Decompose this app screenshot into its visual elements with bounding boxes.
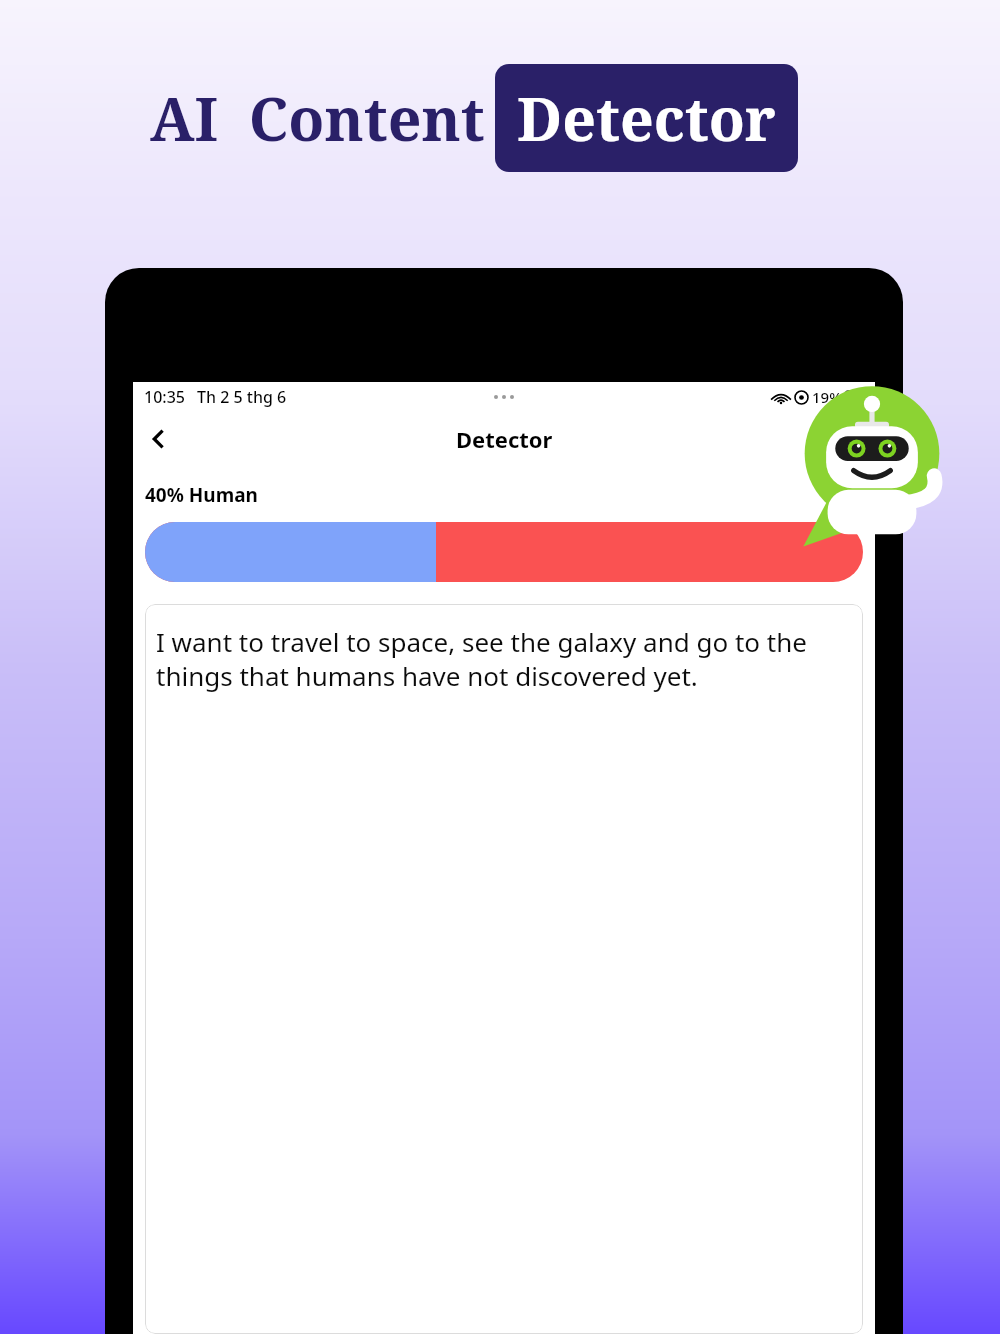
staticText: Th 2 5 thg 6 [197, 386, 287, 408]
staticText: 40% Human [145, 482, 258, 508]
staticText: 19% [812, 387, 842, 407]
button[interactable] [145, 522, 863, 582]
staticText: Detector [456, 424, 553, 454]
staticText: AI Content [150, 78, 485, 158]
button[interactable]: I want to travel to space, see the galax… [145, 604, 863, 1334]
staticText: I want to travel to space, see the galax… [156, 624, 851, 693]
staticText: Detector [517, 78, 776, 158]
other: AI assistant robot [798, 384, 946, 532]
button[interactable]: Back [137, 417, 181, 461]
staticText: 10:35 [144, 386, 185, 408]
